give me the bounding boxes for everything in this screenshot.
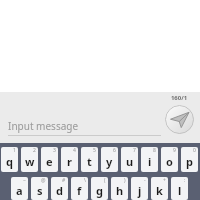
staticText: 1 <box>13 147 16 154</box>
button[interactable]: ( <box>91 177 108 200</box>
staticText: h <box>116 183 124 198</box>
button[interactable]: 2 <box>21 147 38 172</box>
staticText: 9 <box>173 147 176 154</box>
button[interactable]: 7 <box>121 147 138 172</box>
staticText: 0 <box>193 147 196 154</box>
staticText: + <box>163 177 166 184</box>
staticText: s <box>37 183 43 198</box>
staticText: 6 <box>113 147 116 154</box>
staticText: 8 <box>153 147 156 154</box>
staticText: - <box>144 177 146 184</box>
button[interactable]: 1 <box>1 147 18 172</box>
button[interactable]: + <box>151 177 168 200</box>
staticText: ) <box>124 177 126 184</box>
staticText: p <box>186 154 193 169</box>
staticText: \ <box>84 177 86 184</box>
button[interactable]: @ <box>31 177 48 200</box>
staticText: q <box>6 154 13 169</box>
staticText: i <box>148 154 152 169</box>
staticText: y <box>106 154 113 169</box>
staticText: u <box>126 154 134 169</box>
staticText: e <box>46 154 53 169</box>
staticText: l <box>178 183 182 198</box>
button[interactable]: # <box>51 177 68 200</box>
staticText: # <box>62 177 66 184</box>
button[interactable]: 5 <box>81 147 98 172</box>
staticText: 160/1 <box>165 94 193 102</box>
button[interactable]: ) <box>111 177 128 200</box>
button[interactable]: 9 <box>161 147 178 172</box>
staticText: 3 <box>53 147 56 154</box>
staticText: Input message <box>8 119 79 133</box>
button[interactable]: 6 <box>101 147 118 172</box>
button[interactable]: Send message <box>165 105 194 134</box>
button[interactable]: - <box>131 177 148 200</box>
staticText: a <box>16 183 23 198</box>
button[interactable]: 0 <box>181 147 198 172</box>
staticText: t <box>87 154 92 169</box>
staticText: o <box>166 154 173 169</box>
button[interactable]: : <box>171 177 188 200</box>
staticText: 7 <box>133 147 136 154</box>
button[interactable]: ~ <box>11 177 28 200</box>
staticText: j <box>138 183 142 198</box>
staticText: r <box>67 154 72 169</box>
staticText: 4 <box>73 147 76 154</box>
staticText: w <box>25 154 35 169</box>
staticText: g <box>96 183 103 198</box>
button[interactable]: \ <box>71 177 88 200</box>
staticText: k <box>156 183 163 198</box>
button[interactable]: 8 <box>141 147 158 172</box>
button[interactable]: 3 <box>41 147 58 172</box>
staticText: d <box>56 183 63 198</box>
staticText: ( <box>104 177 106 184</box>
staticText: 5 <box>93 147 96 154</box>
button[interactable]: Input message <box>8 117 161 136</box>
staticText: @ <box>41 177 46 184</box>
button[interactable]: 4 <box>61 147 78 172</box>
staticText: : <box>184 177 186 184</box>
staticText: 2 <box>33 147 36 154</box>
staticText: f <box>77 183 82 198</box>
staticText: ~ <box>23 177 26 184</box>
